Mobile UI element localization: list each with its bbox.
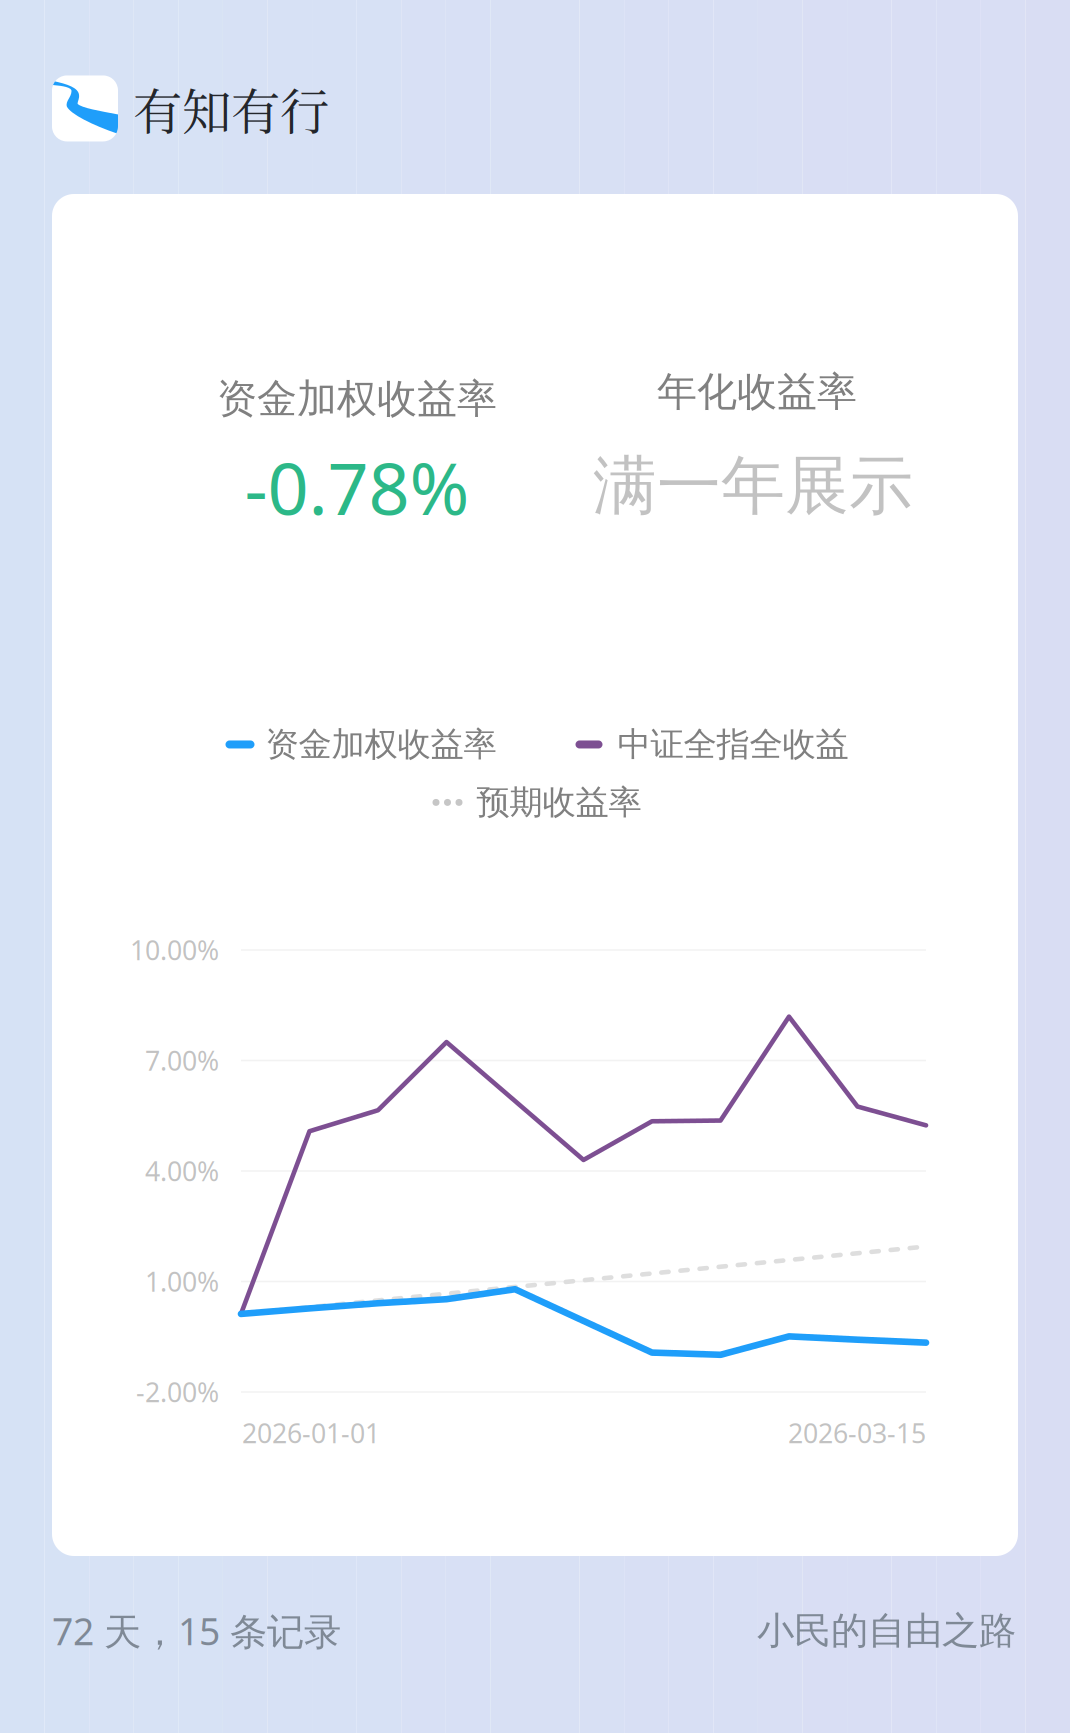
staticText: -2.00% xyxy=(136,1374,219,1410)
staticText: 预期收益率 xyxy=(476,782,641,823)
staticText: 中证全指全收益 xyxy=(617,724,848,765)
staticText: 2026-03-15 xyxy=(788,1415,926,1451)
staticText: 2026-01-01 xyxy=(242,1415,380,1451)
staticText: -0.78% xyxy=(244,439,469,535)
button[interactable]: 有知有行 xyxy=(52,73,329,144)
staticText: 72 天，15 条记录 xyxy=(52,1606,341,1656)
staticText: 1.00% xyxy=(145,1264,219,1299)
staticText: 4.00% xyxy=(145,1153,219,1189)
staticText: 资金加权收益率 xyxy=(265,724,496,765)
staticText: 10.00% xyxy=(130,932,219,968)
staticText: 小民的自由之路 xyxy=(757,1608,1016,1654)
staticText: 年化收益率 xyxy=(657,367,857,416)
staticText: 满一年展示 xyxy=(593,447,913,525)
staticText: 资金加权收益率 xyxy=(217,374,497,423)
staticText: 7.00% xyxy=(145,1043,219,1078)
staticText: 有知有行 xyxy=(133,73,329,144)
